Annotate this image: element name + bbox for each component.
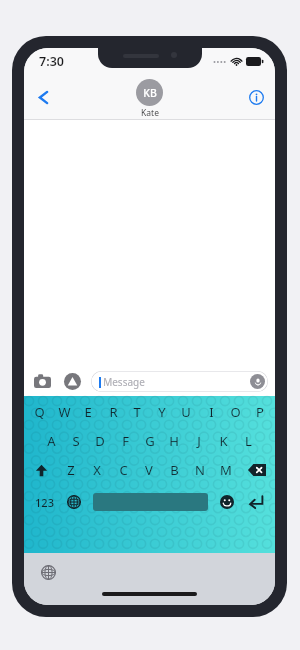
button[interactable]: Apps	[61, 370, 84, 393]
staticText: O	[230, 403, 241, 421]
staticText: L	[245, 432, 252, 450]
button[interactable]: W	[54, 402, 74, 422]
staticText: Y	[158, 403, 166, 421]
button[interactable]: U	[176, 402, 196, 422]
button[interactable]: R	[103, 402, 123, 422]
button[interactable]: Y	[152, 402, 172, 422]
button[interactable]: N	[190, 460, 210, 480]
button[interactable]: Message	[91, 371, 268, 392]
button[interactable]: Back	[28, 82, 58, 112]
staticText: V	[145, 461, 153, 479]
button[interactable]: Backspace	[244, 460, 270, 480]
button[interactable]: D	[90, 431, 110, 451]
staticText: C	[119, 461, 128, 479]
staticText: 7:30	[39, 53, 64, 70]
button[interactable]: Details	[243, 84, 269, 110]
button[interactable]: G	[140, 431, 160, 451]
button[interactable]: Emoji	[218, 493, 236, 511]
staticText: 123	[35, 495, 54, 510]
staticText: G	[145, 432, 155, 450]
staticText: N	[195, 461, 205, 479]
staticText: P	[256, 403, 264, 421]
button[interactable]: J	[189, 431, 209, 451]
button[interactable]: Q	[29, 402, 49, 422]
staticText: KB	[143, 86, 157, 100]
button[interactable]: Dictate	[250, 374, 265, 389]
button[interactable]: T	[127, 402, 147, 422]
staticText: A	[47, 432, 56, 450]
staticText: Q	[34, 403, 45, 421]
staticText: E	[84, 403, 92, 421]
staticText: S	[72, 432, 80, 450]
button[interactable]: O	[225, 402, 245, 422]
button[interactable]: L	[238, 431, 258, 451]
staticText: T	[133, 403, 141, 421]
staticText: K	[219, 432, 228, 450]
button[interactable]: E	[78, 402, 98, 422]
button[interactable]: M	[216, 460, 236, 480]
staticText: B	[170, 461, 179, 479]
staticText: F	[122, 432, 129, 450]
staticText: I	[209, 403, 214, 421]
button[interactable]: KB	[136, 79, 163, 119]
button[interactable]: K	[213, 431, 233, 451]
staticText: R	[109, 403, 118, 421]
button[interactable]: 123	[31, 490, 57, 514]
button[interactable]: Camera	[31, 370, 54, 393]
button[interactable]: B	[164, 460, 184, 480]
button[interactable]: H	[164, 431, 184, 451]
staticText: Message	[103, 375, 145, 389]
staticText: Z	[67, 461, 75, 479]
button[interactable]: Z	[61, 460, 81, 480]
staticText: W	[58, 403, 71, 421]
button[interactable]: A	[41, 431, 61, 451]
button[interactable]: P	[250, 402, 270, 422]
button[interactable]: C	[113, 460, 133, 480]
button[interactable]: Change language	[65, 493, 83, 511]
staticText: D	[95, 432, 105, 450]
button[interactable]: S	[66, 431, 86, 451]
button[interactable]: F	[115, 431, 135, 451]
button[interactable]: Return	[244, 490, 268, 514]
button[interactable]: I	[201, 402, 221, 422]
staticText: J	[197, 432, 201, 450]
staticText: H	[169, 432, 179, 450]
button[interactable]: Keyboard language	[38, 562, 58, 582]
staticText: U	[181, 403, 191, 421]
button[interactable]: X	[87, 460, 107, 480]
staticText: Kate	[141, 107, 159, 119]
staticText: M	[220, 461, 232, 479]
button[interactable]: Space	[93, 493, 208, 511]
button[interactable]: Shift	[29, 460, 53, 480]
staticText: X	[93, 461, 101, 479]
button[interactable]: V	[139, 460, 159, 480]
